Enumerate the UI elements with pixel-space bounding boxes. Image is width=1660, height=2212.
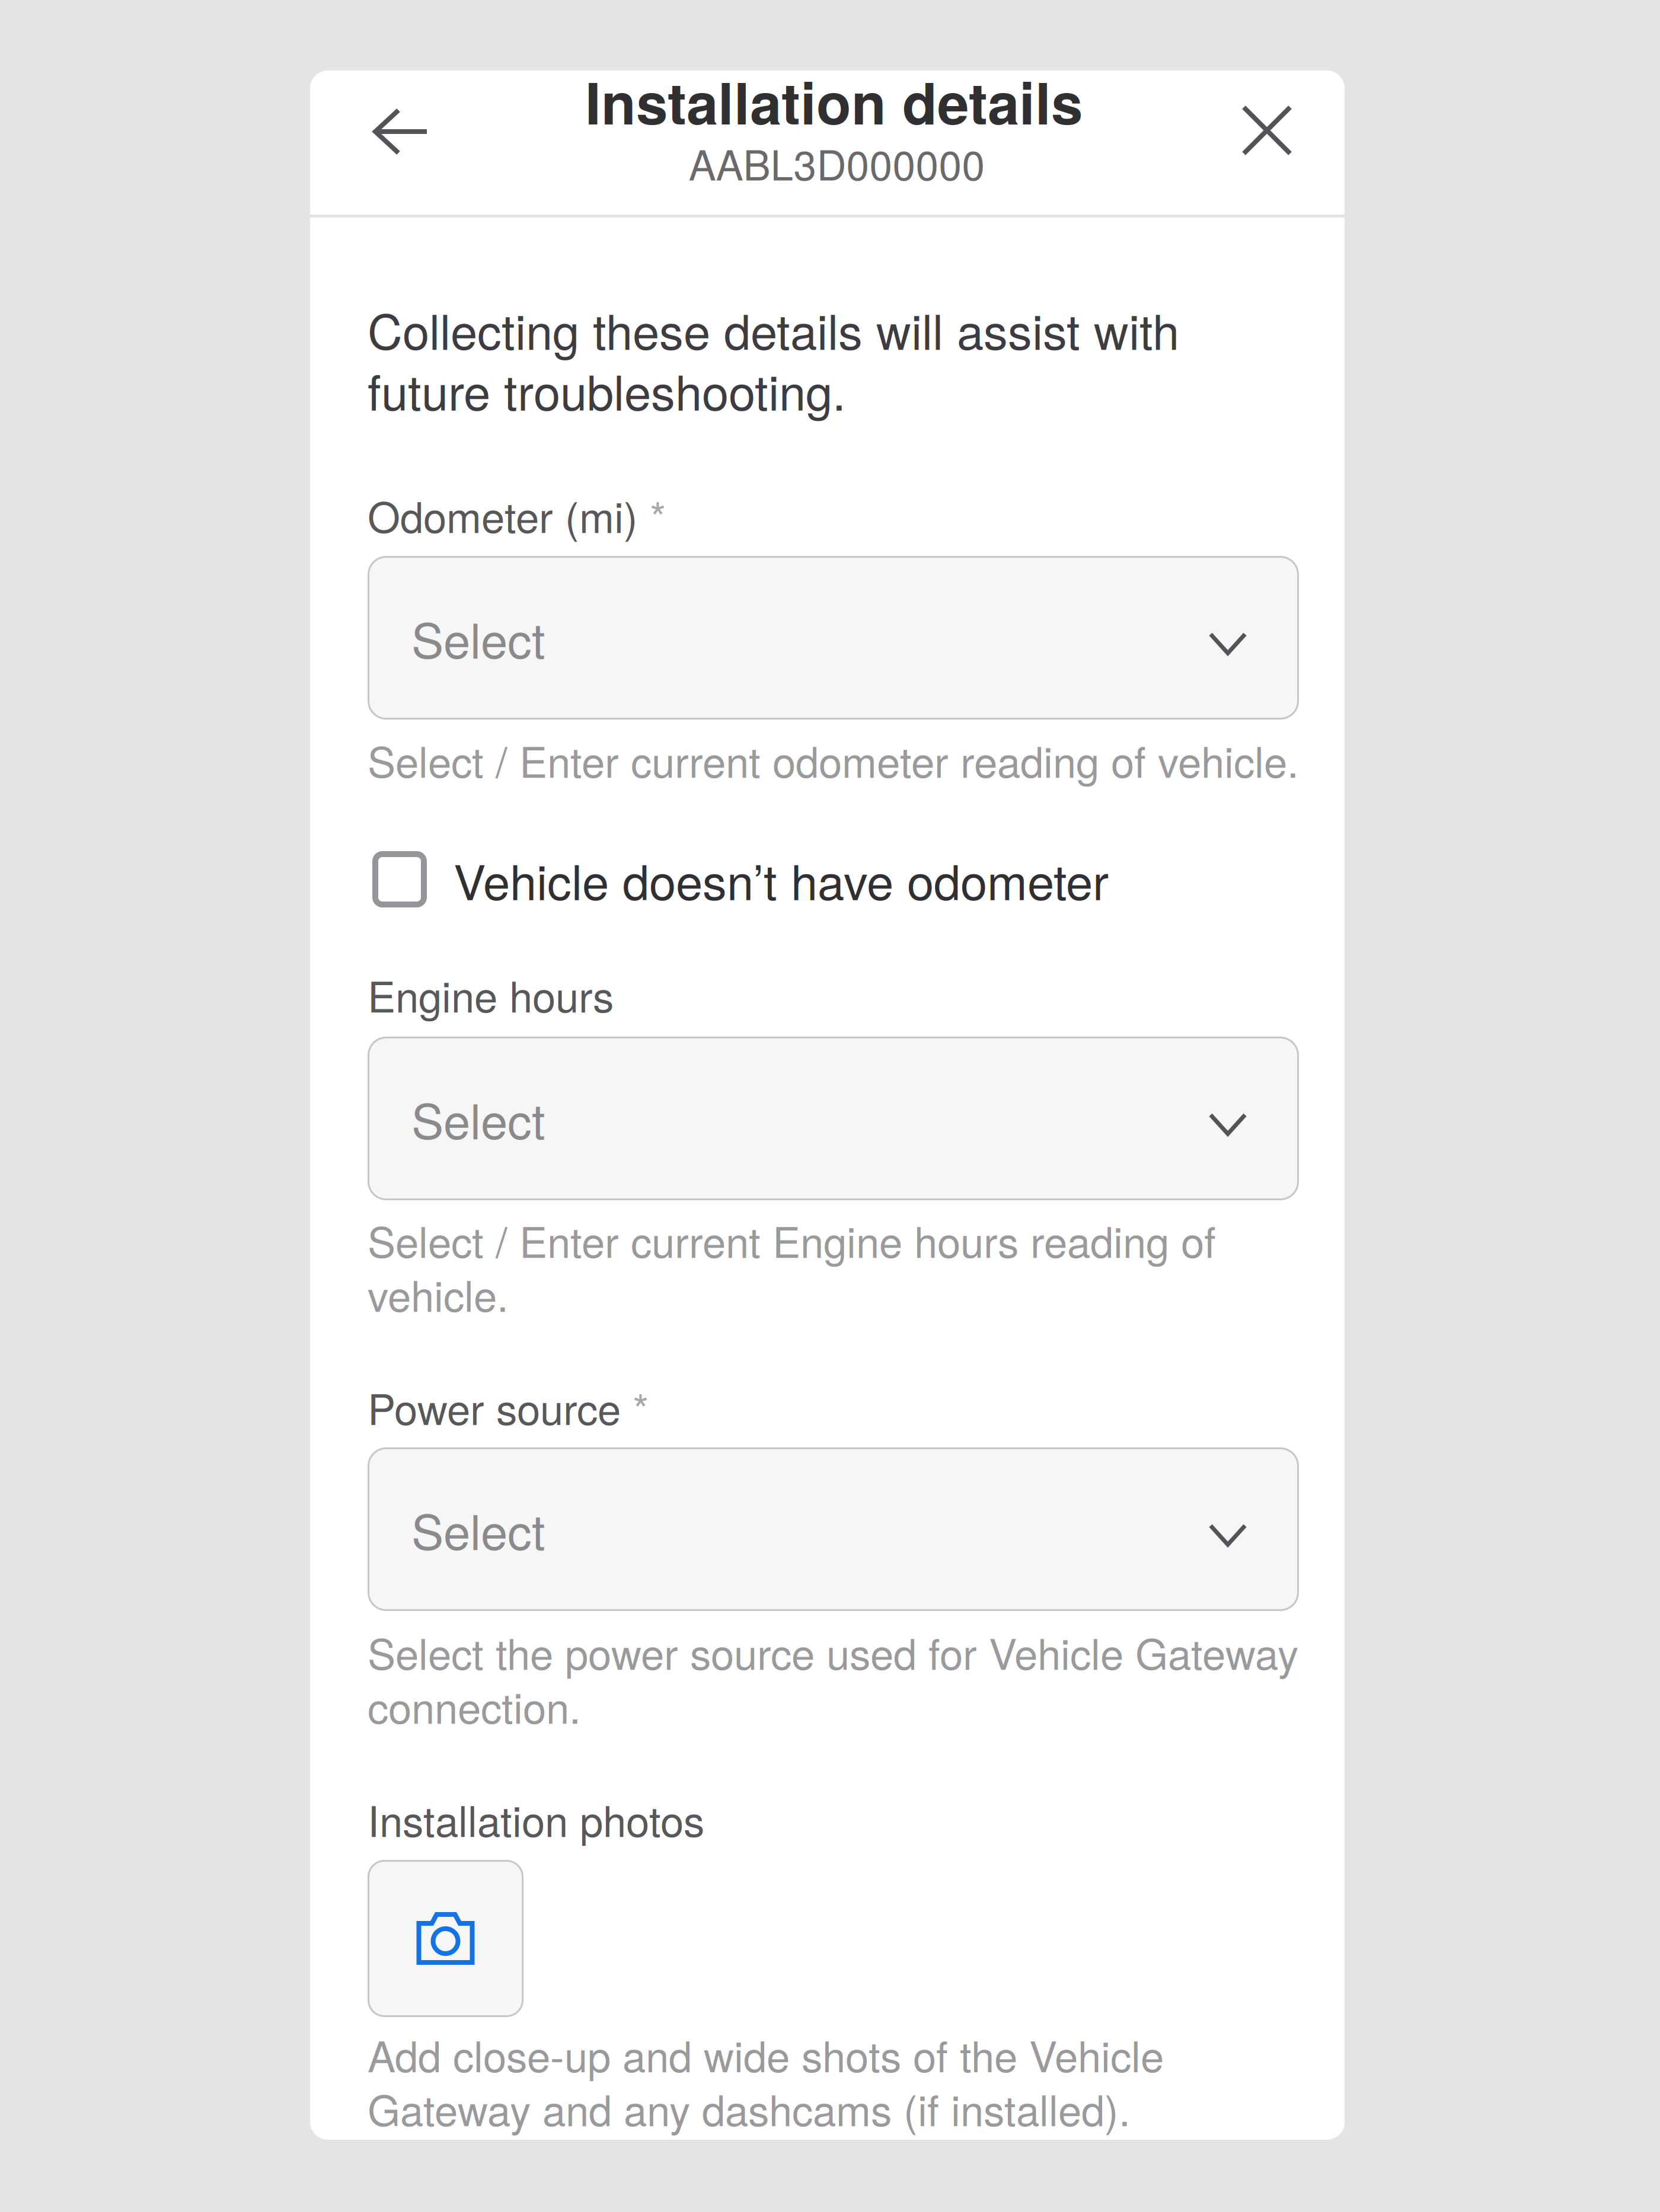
button[interactable]: Vehicle doesn’t have odometer [368,851,1299,907]
staticText: Select [411,603,545,672]
staticText: Collecting these details will assist wit… [368,295,1179,424]
staticText: Power source [368,1377,621,1437]
staticText: Odometer (mi) [368,485,638,545]
button[interactable]: Select [368,1037,1299,1200]
staticText: Installation photos [368,1789,704,1849]
staticText: Select / Enter current odometer reading … [368,730,1299,790]
staticText: Select the power source used for Vehicle… [368,1622,1298,1736]
staticText: Installation details [585,60,1083,142]
staticText: Add close-up and wide shots of the Vehic… [368,2024,1164,2138]
staticText: Select [411,1084,545,1153]
staticText: Select [411,1495,545,1564]
staticText: Engine hours [368,964,614,1024]
staticText: AABL3D000000 [689,133,985,192]
staticText: * [638,485,666,545]
staticText: * [621,1377,649,1437]
button[interactable]: Close [1222,86,1311,175]
button[interactable]: Select [368,556,1299,720]
staticText: Select / Enter current Engine hours read… [368,1210,1216,1324]
staticText: Vehicle doesn’t have odometer [454,845,1109,914]
button[interactable]: Back [356,87,445,176]
button[interactable]: Add installation photo [368,1860,523,2017]
button[interactable]: Select [368,1447,1299,1611]
